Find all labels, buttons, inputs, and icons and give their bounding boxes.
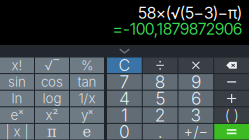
staticText: cos [41, 74, 63, 90]
staticText: 4 [119, 88, 130, 109]
staticText: C [118, 56, 130, 75]
button[interactable]: Multiply [178, 57, 213, 73]
staticText: yˣ [81, 107, 93, 123]
button[interactable]: sin [0, 74, 34, 90]
button[interactable]: eˣ [0, 107, 34, 123]
button[interactable]: 1/x [70, 91, 104, 106]
staticText: 2 [155, 105, 166, 126]
staticText: =-100,1879872906 [113, 19, 242, 39]
button[interactable]: x² [35, 107, 69, 123]
staticText: x! [11, 57, 22, 73]
button[interactable]: 6 [178, 91, 213, 106]
button[interactable]: ( ) [214, 107, 249, 123]
staticText: 6 [191, 88, 201, 109]
button[interactable]: √‾ [35, 57, 69, 73]
staticText: +/− [183, 123, 208, 140]
staticText: ( ) [225, 106, 239, 124]
button[interactable]: 4 [107, 91, 142, 106]
staticText: e [82, 123, 91, 140]
staticText: √‾ [44, 57, 59, 73]
staticText: sin [8, 74, 26, 90]
staticText: π [47, 123, 57, 140]
button[interactable]: π [35, 124, 69, 139]
button[interactable]: tan [70, 74, 104, 90]
staticText: log [42, 90, 61, 106]
button[interactable]: 8 [143, 74, 178, 90]
button[interactable]: ln [0, 91, 34, 106]
staticText: . [158, 121, 163, 140]
button[interactable]: +/− [178, 124, 213, 139]
button[interactable]: Divide [143, 57, 178, 73]
button[interactable]: 5 [143, 91, 178, 106]
button[interactable]: 1 [107, 107, 142, 123]
staticText: tan [77, 74, 96, 90]
button[interactable]: 2 [143, 107, 178, 123]
button[interactable]: log [35, 91, 69, 106]
staticText: 5 [155, 88, 165, 109]
button[interactable]: 3 [178, 107, 213, 123]
button[interactable]: % [70, 57, 104, 73]
staticText: % [81, 57, 93, 73]
button[interactable]: | x | [0, 124, 34, 139]
staticText: 58×(√(5−3)−π) [138, 3, 242, 23]
staticText: 8 [155, 71, 166, 92]
button[interactable]: C [107, 57, 142, 73]
staticText: 1 [121, 105, 128, 126]
staticText: | x | [5, 124, 28, 140]
button[interactable]: 7 [107, 74, 142, 90]
button[interactable]: e [70, 124, 104, 139]
button[interactable]: Minus [214, 74, 249, 90]
button[interactable]: cos [35, 74, 69, 90]
button[interactable]: yˣ [70, 107, 104, 123]
staticText: 7 [119, 71, 129, 92]
button[interactable]: Delete [214, 57, 249, 73]
button[interactable]: 9 [178, 74, 213, 90]
button[interactable]: Show history [0, 45, 249, 57]
staticText: 0 [119, 121, 130, 140]
button[interactable]: . [143, 124, 178, 139]
button[interactable]: x! [0, 57, 34, 73]
staticText: x² [45, 107, 58, 123]
staticText: ln [11, 90, 22, 106]
button[interactable]: 0 [107, 124, 142, 139]
button[interactable]: Equals [214, 124, 249, 139]
staticText: 9 [191, 71, 201, 92]
staticText: 1/x [78, 90, 95, 106]
staticText: 3 [190, 105, 201, 126]
staticText: eˣ [10, 107, 23, 123]
button[interactable]: Plus [214, 91, 249, 106]
